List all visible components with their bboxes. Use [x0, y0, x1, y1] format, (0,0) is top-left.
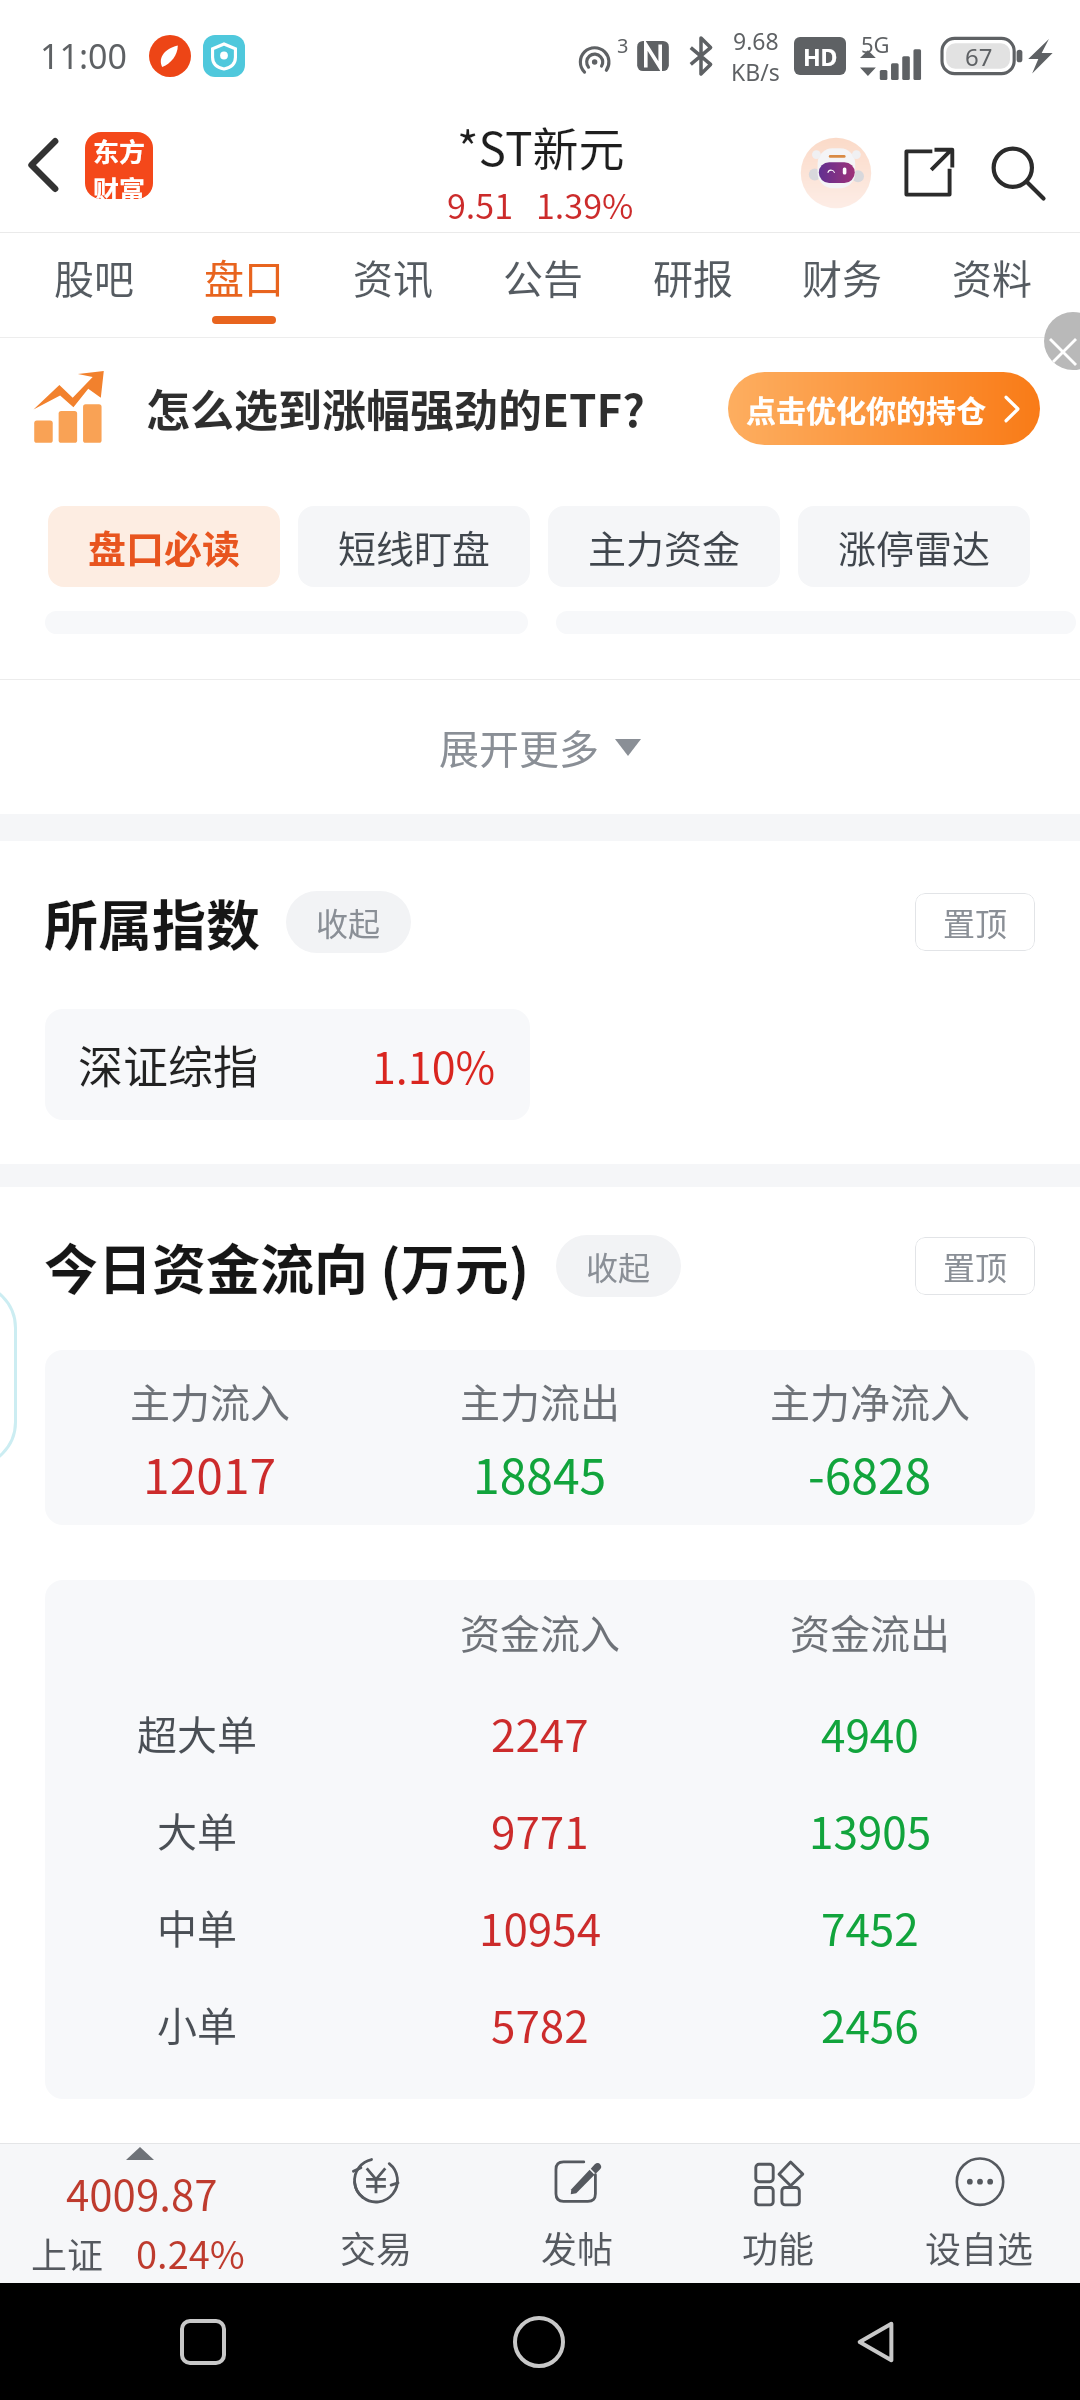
staticText: 所属指数 — [44, 883, 260, 961]
button[interactable]: 资料 — [952, 233, 1032, 338]
button[interactable]: 资讯 — [353, 233, 433, 338]
button[interactable]: 公告 — [503, 233, 583, 338]
staticText: 67 — [965, 40, 993, 73]
button[interactable]: 功能 — [678, 2144, 879, 2283]
button[interactable]: 点击优化你的持仓 — [728, 372, 1040, 445]
staticText: 5782 — [491, 1992, 589, 2056]
staticText: 涨停雷达 — [838, 519, 991, 574]
staticText: 上证 — [31, 2227, 104, 2279]
staticText: 4940 — [821, 1701, 919, 1765]
button[interactable]: 设自选 — [879, 2144, 1080, 2283]
button[interactable]: 收起 — [286, 891, 411, 953]
staticText: 收起 — [316, 899, 381, 945]
staticText: 主力流出 — [460, 1372, 620, 1430]
button[interactable]: 置顶 — [915, 893, 1035, 951]
staticText: 交易 — [340, 2221, 413, 2273]
staticText: 收起 — [586, 1243, 651, 1289]
button[interactable]: Share — [888, 133, 968, 213]
button[interactable]: 研报 — [653, 233, 733, 338]
staticText: 盘口必读 — [88, 519, 241, 574]
staticText: 中单 — [157, 1898, 237, 1956]
button[interactable]: Assistant — [796, 133, 876, 213]
staticText: 置顶 — [943, 899, 1008, 945]
staticText: 盘口 — [204, 248, 284, 306]
button[interactable]: 主力资金 — [548, 506, 780, 587]
staticText: 主力净流入 — [770, 1372, 970, 1430]
staticText: 2456 — [821, 1992, 919, 2056]
button[interactable]: 涨停雷达 — [798, 506, 1030, 587]
button[interactable]: Close ad — [1044, 312, 1080, 370]
staticText: 功能 — [742, 2221, 815, 2273]
staticText: 1.10% — [372, 1034, 496, 1096]
staticText: 股吧 — [54, 248, 134, 306]
button[interactable]: 盘口必读 — [48, 506, 280, 587]
staticText: 展开更多 — [439, 718, 599, 776]
button[interactable]: 深证综指 — [45, 1009, 530, 1120]
staticText: 公告 — [503, 248, 583, 306]
staticText: HD — [803, 41, 838, 72]
staticText: 置顶 — [943, 1243, 1008, 1289]
staticText: 13905 — [809, 1798, 932, 1862]
staticText: 财富 — [93, 170, 146, 199]
button[interactable]: 财务 — [802, 233, 882, 338]
button[interactable]: 置顶 — [915, 1237, 1035, 1295]
button[interactable]: Back — [0, 126, 85, 204]
staticText: 短线盯盘 — [338, 519, 491, 574]
staticText: 5G — [861, 29, 890, 59]
staticText: 0.24% — [136, 2225, 245, 2280]
staticText: 资金流出 — [790, 1603, 950, 1661]
button[interactable]: 发帖 — [477, 2144, 678, 2283]
button[interactable]: Search — [978, 133, 1058, 213]
staticText: 2247 — [491, 1701, 589, 1765]
staticText: 资讯 — [353, 248, 433, 306]
staticText: 9.51 — [447, 180, 514, 229]
staticText: 7452 — [821, 1895, 919, 1959]
staticText: 东方 — [93, 132, 146, 170]
staticText: 今日资金流向 (万元) — [44, 1227, 530, 1305]
staticText: 财务 — [802, 248, 882, 306]
staticText: 4009.87 — [66, 2162, 218, 2223]
staticText: 深证综指 — [78, 1032, 259, 1097]
staticText: 9.68 — [733, 25, 779, 56]
staticText: 大单 — [157, 1801, 237, 1859]
staticText: -6828 — [808, 1438, 932, 1508]
staticText: 1.39% — [536, 180, 634, 229]
staticText: 9771 — [491, 1798, 589, 1862]
staticText: 设自选 — [925, 2221, 1034, 2273]
button[interactable]: 东方 — [85, 132, 153, 199]
button[interactable]: 短线盯盘 — [298, 506, 530, 587]
button[interactable]: 交易 — [275, 2144, 477, 2283]
staticText: KB/s — [731, 56, 780, 87]
button[interactable]: 盘口 — [204, 233, 284, 338]
staticText: 11:00 — [40, 33, 127, 79]
button[interactable]: 股吧 — [54, 233, 134, 338]
staticText: 3 — [617, 32, 629, 59]
staticText: 主力资金 — [588, 519, 741, 574]
staticText: 18845 — [473, 1438, 607, 1508]
button[interactable]: 展开更多 — [0, 680, 1080, 814]
staticText: 小单 — [157, 1995, 237, 2053]
staticText: 发帖 — [541, 2221, 614, 2273]
staticText: 怎么选到涨幅强劲的ETF? — [146, 376, 645, 440]
staticText: 10954 — [479, 1895, 602, 1959]
button[interactable]: 收起 — [556, 1235, 681, 1297]
staticText: 研报 — [653, 248, 733, 306]
staticText: 资金流入 — [460, 1603, 620, 1661]
staticText: 主力流入 — [130, 1372, 290, 1430]
staticText: 12017 — [143, 1438, 277, 1508]
staticText: *ST新元 — [457, 113, 625, 180]
staticText: 点击优化你的持仓 — [746, 387, 986, 430]
staticText: 资料 — [952, 248, 1032, 306]
button[interactable]: 4009.87 — [0, 2144, 275, 2283]
staticText: 超大单 — [137, 1704, 257, 1762]
